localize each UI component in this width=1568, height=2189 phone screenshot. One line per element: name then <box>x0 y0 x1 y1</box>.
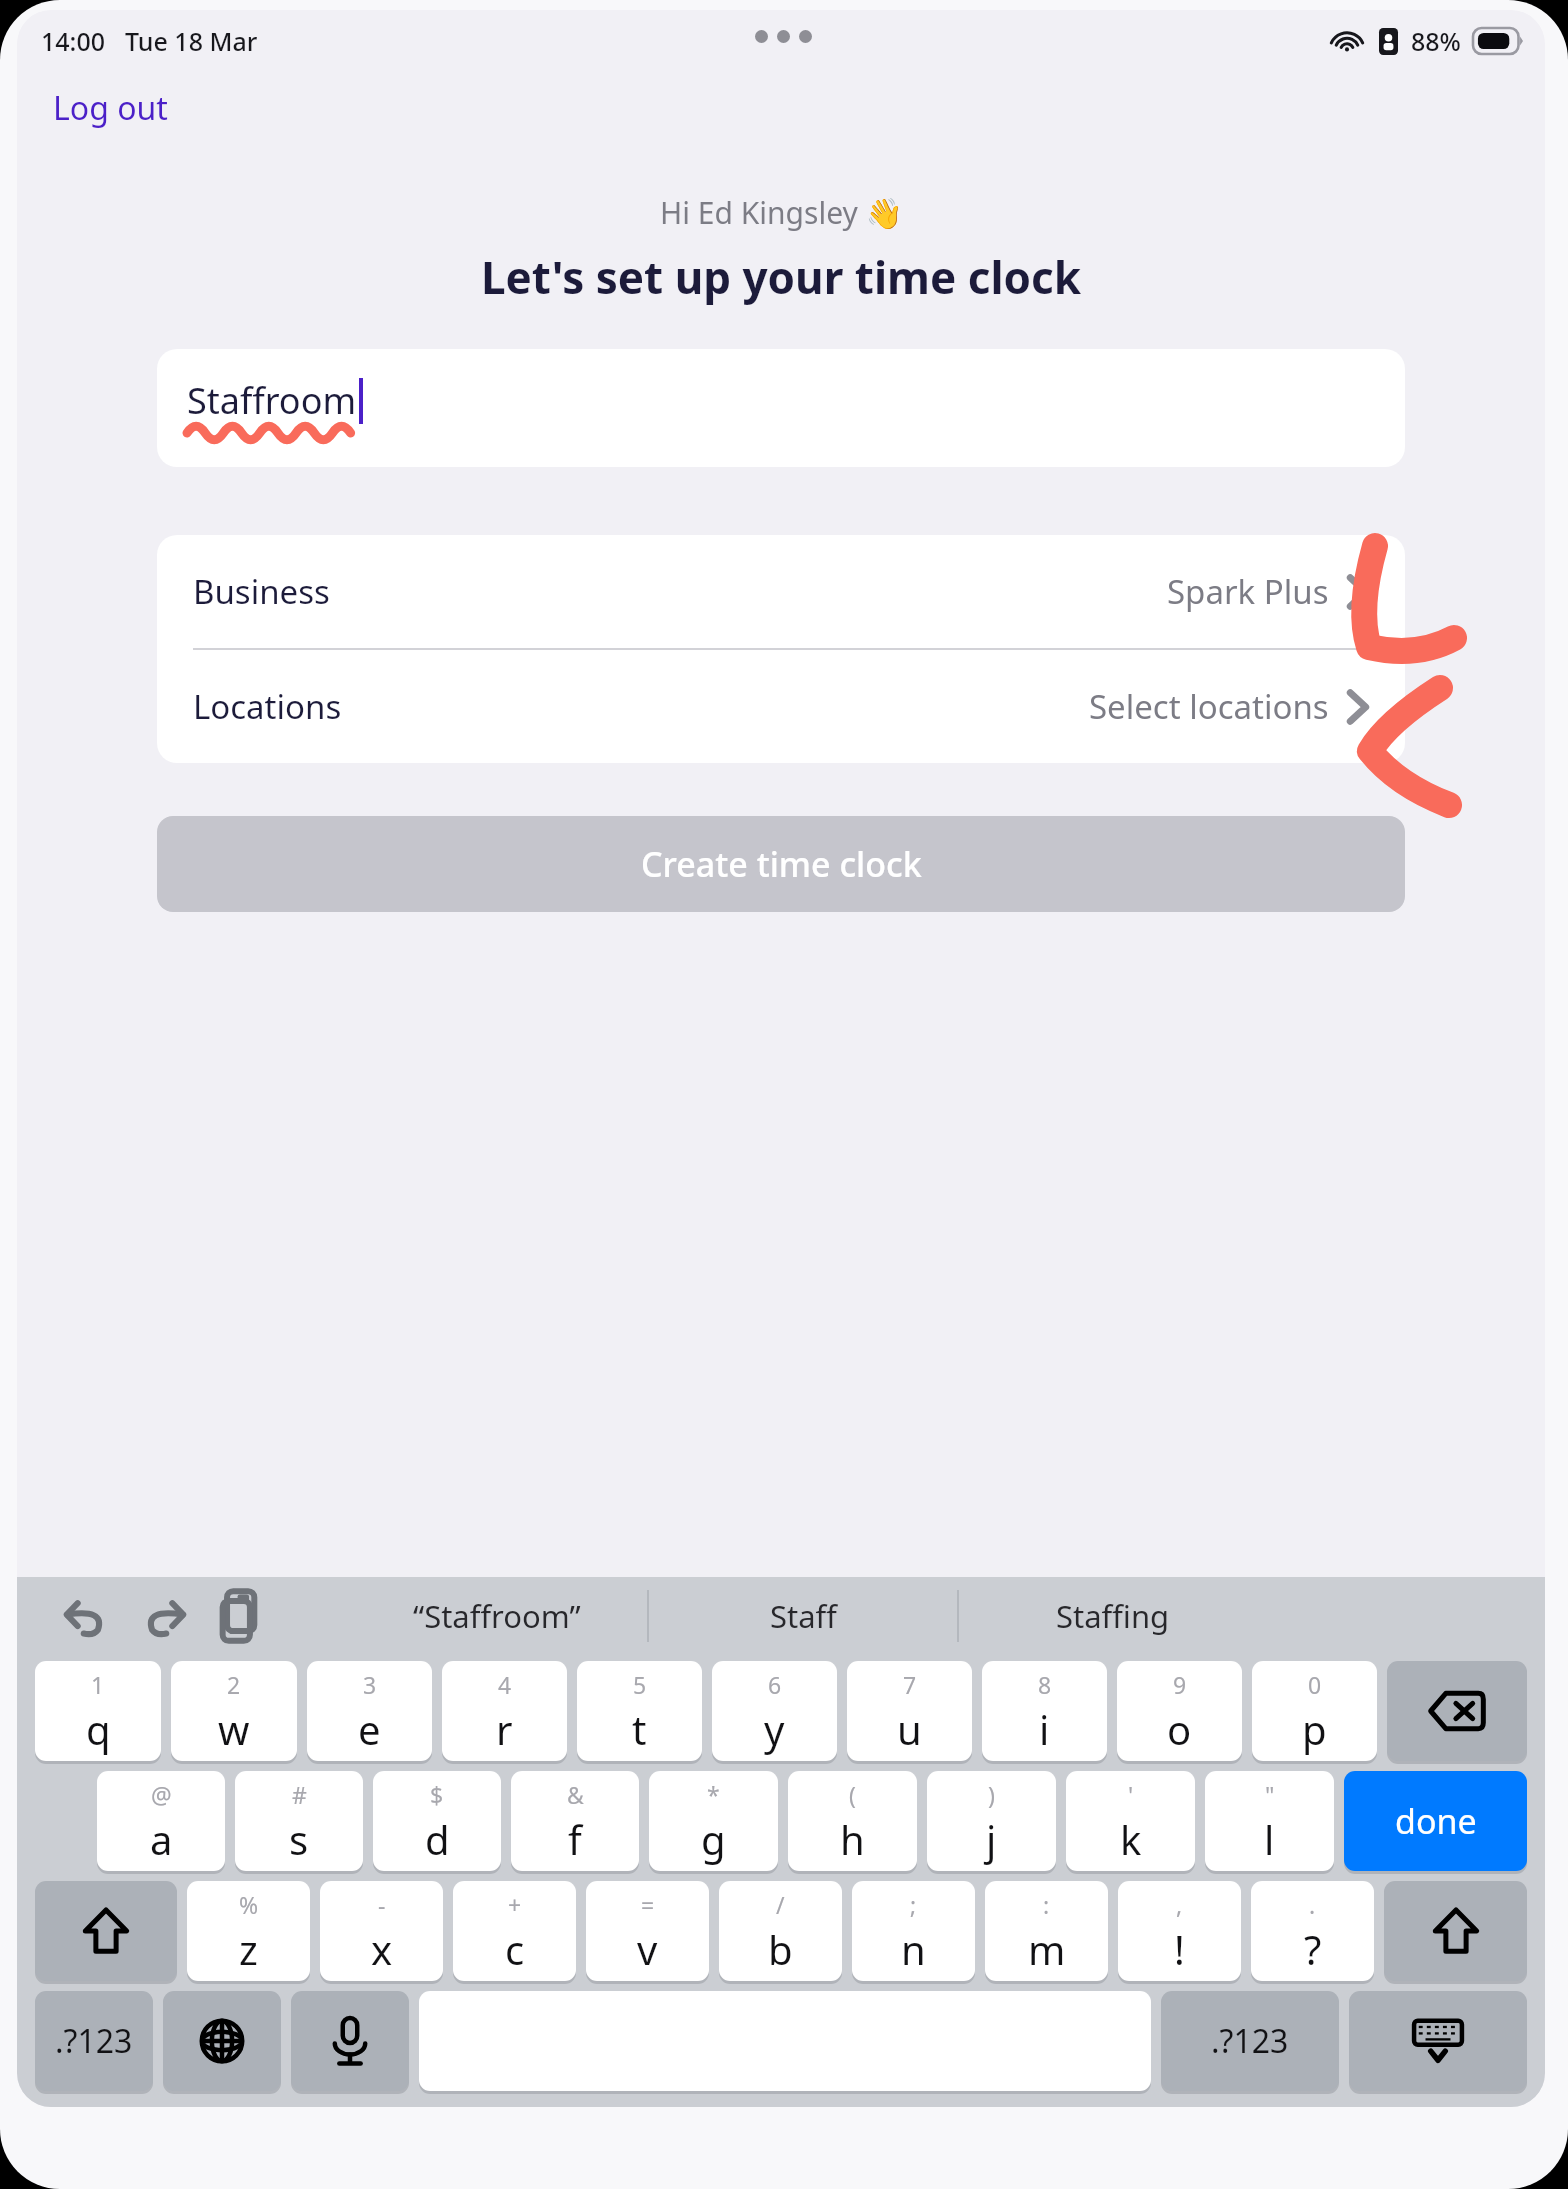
button[interactable]: / <box>719 1881 842 1981</box>
button[interactable]: 6 <box>712 1661 837 1761</box>
button[interactable]: . <box>1251 1881 1374 1981</box>
staticText: $ <box>430 1779 444 1810</box>
staticText: ! <box>1174 1922 1185 1976</box>
staticText: + <box>508 1889 522 1920</box>
button[interactable]: 2 <box>171 1661 297 1761</box>
staticText: n <box>901 1922 926 1976</box>
staticText: f <box>568 1812 582 1866</box>
staticText: k <box>1120 1812 1142 1866</box>
staticText: Let's set up your time clock <box>481 247 1081 307</box>
staticText: j <box>986 1812 997 1866</box>
staticText: t <box>632 1702 647 1756</box>
button[interactable]: Hide keyboard <box>1349 1991 1527 2091</box>
button[interactable]: 5 <box>577 1661 702 1761</box>
staticText: Spark Plus <box>1167 569 1329 614</box>
button[interactable]: Business <box>157 535 1405 648</box>
staticText: u <box>897 1702 922 1756</box>
button[interactable]: ' <box>1066 1771 1195 1871</box>
staticText: % <box>239 1889 259 1920</box>
staticText: Staff <box>770 1595 837 1637</box>
button[interactable]: $ <box>373 1771 501 1871</box>
staticText: Select locations <box>1089 684 1329 729</box>
button[interactable]: Staffing <box>959 1577 1267 1655</box>
staticText: p <box>1302 1702 1327 1756</box>
button[interactable]: ) <box>927 1771 1056 1871</box>
staticText: 4 <box>498 1669 512 1700</box>
button[interactable]: Change keyboard <box>163 1991 281 2091</box>
staticText: 14:00 <box>41 24 106 58</box>
button[interactable]: 9 <box>1117 1661 1242 1761</box>
staticText: 9 <box>1173 1669 1187 1700</box>
staticText: Locations <box>193 684 342 729</box>
staticText: o <box>1167 1702 1192 1756</box>
staticText: 3 <box>363 1669 377 1700</box>
button[interactable]: 0 <box>1252 1661 1377 1761</box>
staticText: . <box>1309 1889 1316 1920</box>
button[interactable]: “Staffroom” <box>347 1577 647 1655</box>
staticText: 5 <box>633 1669 647 1700</box>
staticText: ; <box>910 1889 917 1920</box>
button[interactable]: & <box>511 1771 639 1871</box>
button[interactable]: 8 <box>982 1661 1107 1761</box>
staticText: s <box>289 1812 309 1866</box>
button[interactable]: Dictation <box>291 1991 409 2091</box>
button[interactable]: Paste <box>211 1585 273 1647</box>
staticText: ' <box>1128 1779 1134 1810</box>
staticText: & <box>567 1779 584 1810</box>
button[interactable]: .?123 <box>35 1991 153 2091</box>
button[interactable]: done <box>1344 1771 1527 1871</box>
button[interactable]: 3 <box>307 1661 432 1761</box>
button[interactable]: Create time clock <box>157 816 1405 912</box>
staticText: Staffroom <box>187 376 357 425</box>
button[interactable]: ; <box>852 1881 975 1981</box>
staticText: 8 <box>1038 1669 1052 1700</box>
button[interactable]: , <box>1118 1881 1241 1981</box>
staticText: d <box>425 1812 450 1866</box>
staticText: Tue 18 Mar <box>125 24 258 58</box>
staticText: * <box>707 1779 720 1810</box>
button[interactable]: # <box>235 1771 363 1871</box>
staticText: r <box>496 1702 513 1756</box>
button[interactable]: % <box>187 1881 310 1981</box>
staticText: .?123 <box>1211 2019 1289 2063</box>
button[interactable]: Staff <box>649 1577 957 1655</box>
button[interactable]: Log out <box>37 78 184 138</box>
staticText: # <box>292 1779 307 1810</box>
staticText: : <box>1043 1889 1050 1920</box>
button[interactable]: + <box>453 1881 576 1981</box>
button[interactable]: = <box>586 1881 709 1981</box>
staticText: 2 <box>227 1669 241 1700</box>
staticText: h <box>840 1812 865 1866</box>
staticText: 88% <box>1411 24 1461 58</box>
button[interactable]: : <box>985 1881 1108 1981</box>
staticText: i <box>1039 1702 1050 1756</box>
button[interactable]: .?123 <box>1161 1991 1339 2091</box>
button[interactable]: Shift <box>35 1881 177 1981</box>
button[interactable]: Staffroom <box>157 349 1405 467</box>
staticText: c <box>505 1922 525 1976</box>
button[interactable]: Redo <box>133 1585 195 1647</box>
button[interactable]: Shift <box>1384 1881 1527 1981</box>
button[interactable]: * <box>649 1771 778 1871</box>
button[interactable]: " <box>1205 1771 1334 1871</box>
button[interactable]: Undo <box>55 1585 117 1647</box>
staticText: 0 <box>1308 1669 1322 1700</box>
button[interactable]: 1 <box>35 1661 161 1761</box>
button[interactable]: - <box>320 1881 443 1981</box>
button[interactable]: 7 <box>847 1661 972 1761</box>
button[interactable]: Backspace <box>1387 1661 1527 1761</box>
button[interactable]: @ <box>97 1771 225 1871</box>
button[interactable]: ( <box>788 1771 917 1871</box>
staticText: q <box>86 1702 111 1756</box>
staticText: Business <box>193 569 330 614</box>
staticText: done <box>1395 1798 1477 1844</box>
staticText: " <box>1265 1779 1275 1810</box>
staticText: .?123 <box>55 2019 133 2063</box>
button[interactable]: 4 <box>442 1661 567 1761</box>
staticText: l <box>1264 1812 1275 1866</box>
button[interactable]: Locations <box>157 650 1405 763</box>
staticText: 6 <box>768 1669 782 1700</box>
staticText: @ <box>151 1779 172 1810</box>
staticText: g <box>701 1812 726 1866</box>
